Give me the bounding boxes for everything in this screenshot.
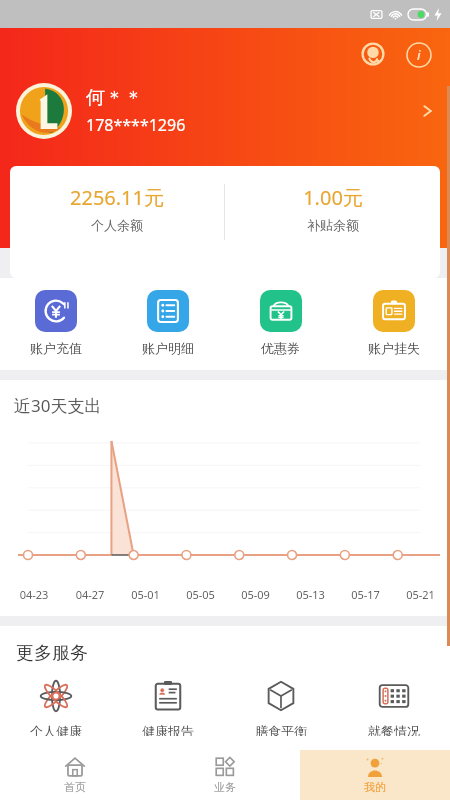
staticText: i: [417, 46, 421, 64]
button[interactable]: 账户挂失: [337, 288, 450, 358]
staticText: 补贴余额: [307, 217, 359, 233]
staticText: 就餐情况: [368, 723, 420, 736]
button[interactable]: 账户充值: [0, 288, 112, 358]
staticText: 05-13: [283, 587, 338, 602]
button[interactable]: 优惠券: [224, 288, 337, 358]
staticText: 1.00元: [303, 184, 363, 211]
staticText: 何＊＊: [86, 86, 143, 110]
staticText: 05-05: [173, 587, 228, 602]
staticText: 2256.11元: [70, 184, 164, 211]
staticText: 05-01: [118, 587, 173, 602]
button[interactable]: 个人健康: [0, 679, 112, 736]
staticText: 膳食平衡: [255, 723, 307, 736]
staticText: 05-21: [393, 587, 448, 602]
button[interactable]: 1.00元: [225, 184, 440, 233]
button[interactable]: 健康报告: [112, 679, 224, 736]
button[interactable]: 首页: [0, 750, 150, 800]
button[interactable]: 我的: [300, 750, 450, 800]
staticText: 个人健康: [30, 723, 82, 736]
button[interactable]: 账户明细: [112, 288, 224, 358]
staticText: 健康报告: [142, 723, 194, 736]
staticText: 更多服务: [16, 642, 88, 665]
staticText: 04-27: [62, 587, 118, 602]
staticText: 账户挂失: [368, 340, 420, 356]
staticText: 近30天支出: [14, 394, 102, 417]
button[interactable]: 业务: [150, 750, 300, 800]
button[interactable]: 膳食平衡: [224, 679, 337, 736]
button[interactable]: Customer service: [356, 38, 390, 72]
staticText: 账户明细: [142, 340, 194, 356]
staticText: 首页: [64, 780, 86, 794]
staticText: 业务: [214, 780, 236, 794]
button[interactable]: 2256.11元: [10, 184, 224, 233]
staticText: 05-09: [228, 587, 283, 602]
staticText: 个人余额: [91, 217, 143, 233]
button[interactable]: Information: [402, 38, 436, 72]
staticText: 账户充值: [30, 340, 82, 356]
staticText: 04-23: [6, 587, 62, 602]
staticText: 05-17: [338, 587, 393, 602]
staticText: 178****1296: [86, 114, 186, 136]
button[interactable]: 就餐情况: [337, 679, 450, 736]
button[interactable]: 何＊＊: [16, 83, 438, 139]
staticText: 优惠券: [261, 340, 300, 356]
staticText: 我的: [364, 780, 386, 794]
